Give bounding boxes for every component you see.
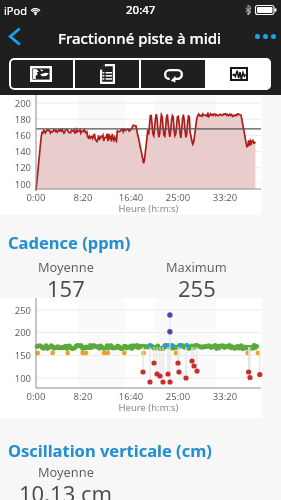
staticText: 8:20 [67, 390, 99, 403]
staticText: 8:20 [67, 191, 99, 204]
button[interactable]: Back [0, 20, 30, 53]
staticText: Moyenne [38, 463, 94, 480]
staticText: 0:00 [20, 390, 52, 403]
staticText: 25:00 [162, 191, 194, 204]
staticText: Fractionné piste à midi [58, 28, 222, 48]
staticText: 150 [4, 349, 31, 362]
staticText: 250 [4, 304, 31, 317]
button[interactable]: Charts [207, 58, 271, 90]
button[interactable]: Map [9, 58, 73, 90]
staticText: 0:00 [20, 191, 52, 204]
button[interactable]: Details [75, 58, 139, 90]
staticText: 25:00 [162, 390, 194, 403]
staticText: 200 [4, 97, 31, 110]
staticText: 100 [4, 178, 31, 191]
button[interactable]: Laps [141, 58, 205, 90]
staticText: 33:20 [209, 191, 241, 204]
staticText: 160 [4, 129, 31, 142]
staticText: iPod [4, 3, 27, 18]
staticText: 16:40 [115, 191, 147, 204]
staticText: 16:40 [115, 390, 147, 403]
staticText: Heure (h:m:s) [36, 401, 261, 414]
staticText: Moyenne [38, 258, 94, 275]
staticText: 180 [4, 113, 31, 126]
staticText: 200 [4, 326, 31, 339]
staticText: 10.13 cm [19, 478, 113, 500]
staticText: 33:20 [209, 390, 241, 403]
staticText: Maximum [166, 258, 227, 275]
button[interactable]: More options [249, 20, 281, 53]
staticText: 100 [4, 372, 31, 385]
staticText: 140 [4, 145, 31, 158]
staticText: 120 [4, 161, 31, 174]
staticText: Oscillation verticale (cm) [8, 439, 212, 461]
staticText: 20:47 [126, 2, 156, 18]
staticText: 255 [178, 273, 216, 303]
staticText: Heure (h:m:s) [36, 202, 261, 215]
staticText: Cadence (ppm) [8, 231, 131, 253]
staticText: 157 [47, 273, 85, 303]
